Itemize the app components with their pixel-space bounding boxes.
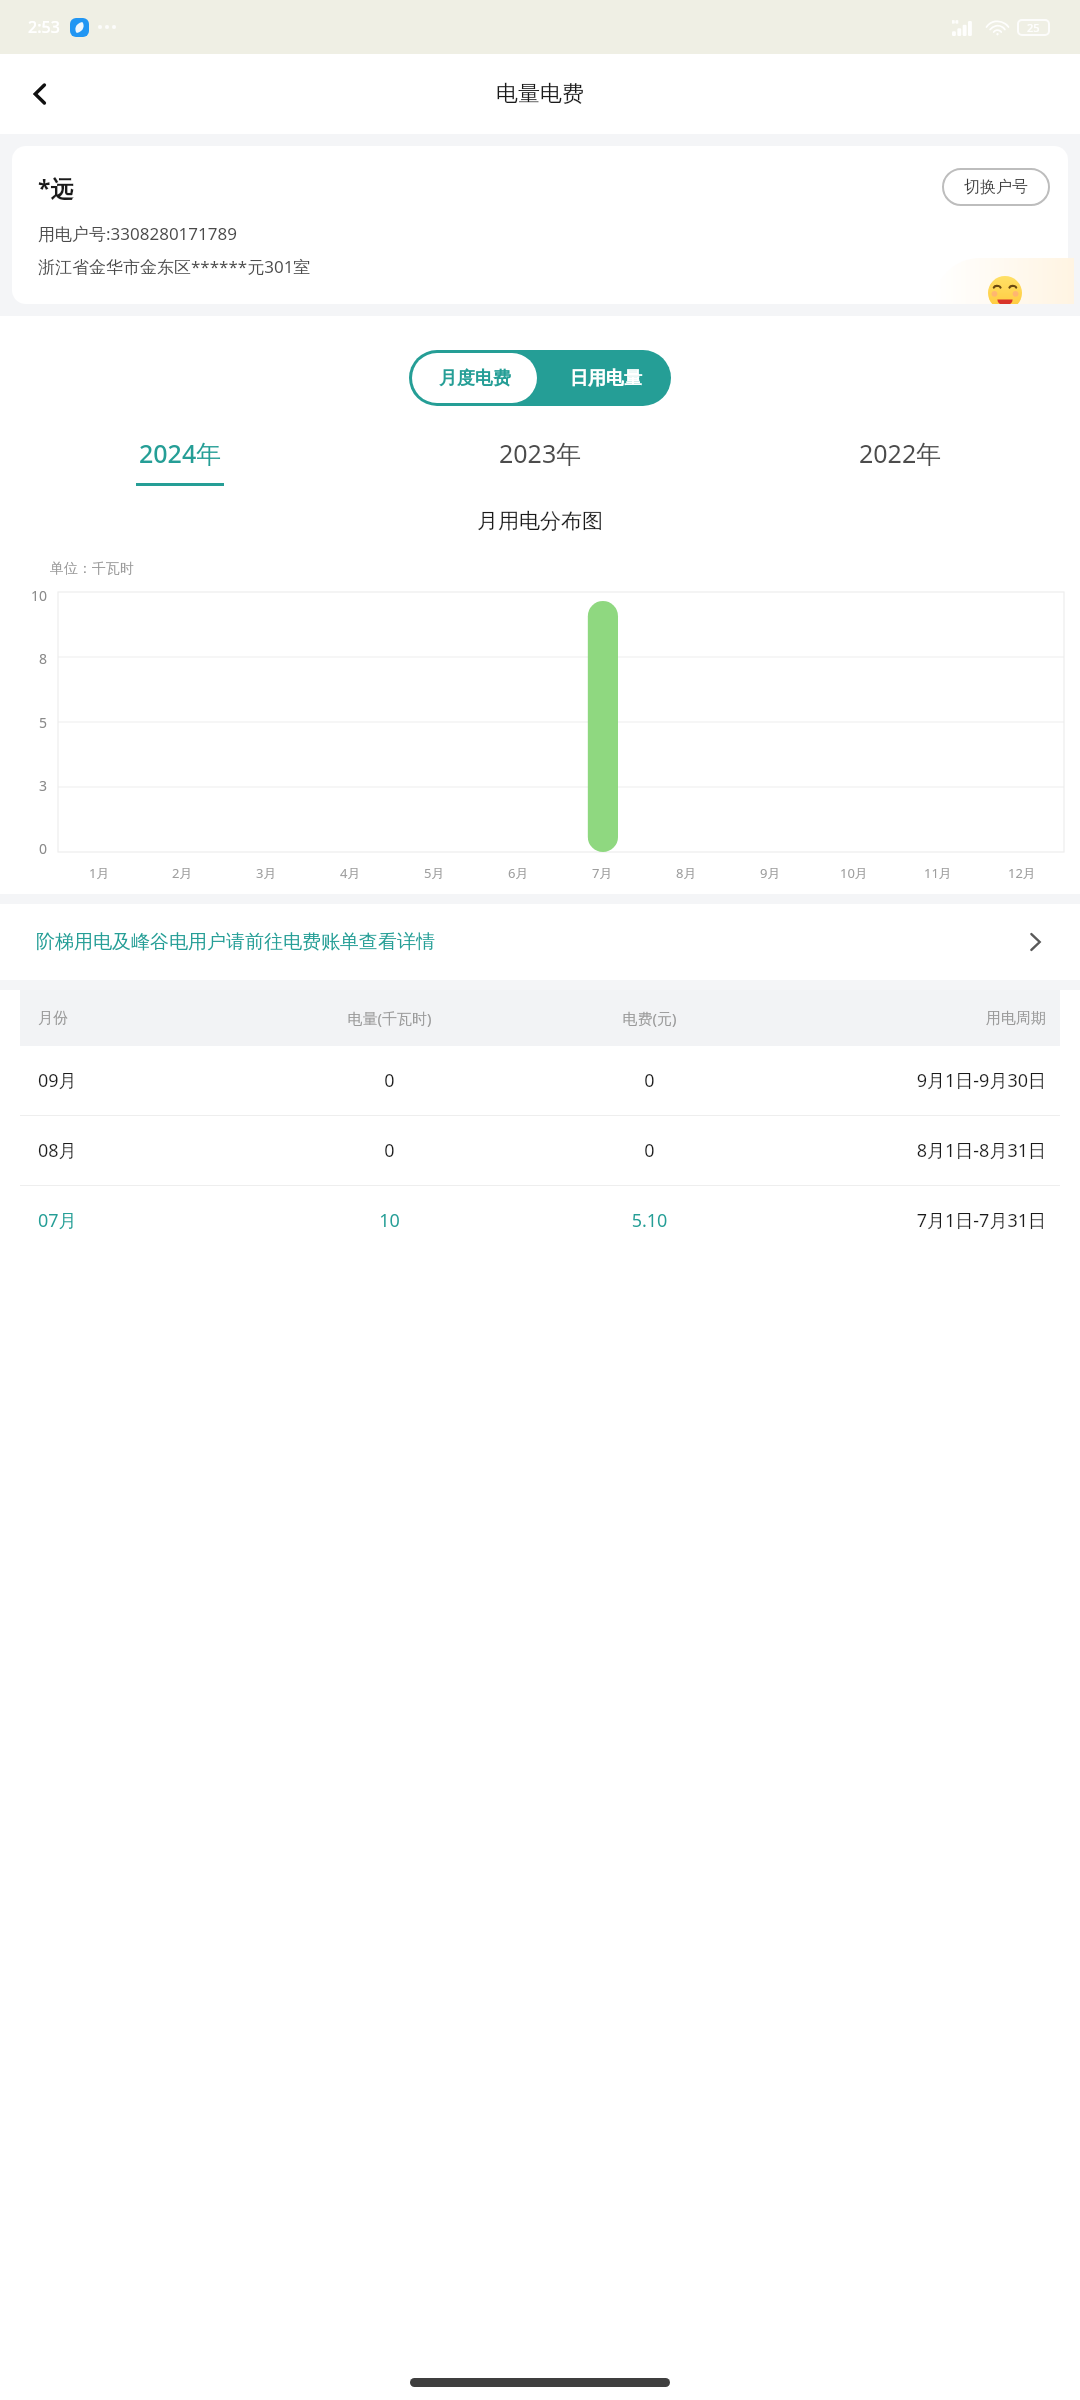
staticText: 2022年 [859,436,942,470]
button[interactable]: *远 [12,146,1068,304]
staticText: 阶梯用电及峰谷电用户请前往电费账单查看详情 [36,930,435,954]
staticText: 2月 [172,864,193,882]
staticText: 0 [530,1138,769,1163]
staticText: 浙江省金华市金东区******元301室 [38,255,311,278]
staticText: 点个赞 [979,312,1030,333]
staticText: 单位：千瓦时 [50,560,134,578]
staticText: 0 [249,1138,530,1163]
button[interactable]: 切换户号 [942,168,1050,206]
button[interactable]: 07月 [20,1186,1060,1255]
staticText: 3月 [256,864,277,882]
staticText: 25 [1027,20,1040,35]
staticText: 07月 [38,1208,249,1233]
staticText: 用电周期 [769,1009,1046,1028]
staticText: 0 [530,1068,769,1093]
staticText: 日用电量 [570,367,642,390]
staticText: 8月1日-8月31日 [769,1138,1046,1163]
button[interactable]: Back [14,68,66,120]
staticText: 7月 [592,864,613,882]
staticText: 2:53 [28,16,60,38]
staticText: 10 [249,1208,530,1233]
staticText: 电费(元) [530,1008,769,1028]
staticText: 用电户号:3308280171789 [38,222,237,245]
staticText: 2023年 [499,436,582,470]
staticText: 10 [31,586,48,605]
button[interactable]: 2024年 [0,436,360,486]
staticText: 月份 [38,1009,249,1028]
staticText: 5月 [424,864,445,882]
staticText: *远 [38,172,74,203]
button[interactable]: 阶梯用电及峰谷电用户请前往电费账单查看详情 [0,904,1080,980]
button[interactable]: 月度电费 [412,353,537,403]
staticText: 8 [39,649,48,668]
staticText: 4月 [340,864,361,882]
staticText: 电量(千瓦时) [249,1008,530,1028]
staticText: 2024年 [139,436,222,470]
staticText: 0 [249,1068,530,1093]
button[interactable]: 点个赞 [934,258,1074,350]
staticText: 电量电费 [496,80,584,108]
staticText: 9月1日-9月30日 [769,1068,1046,1093]
button[interactable]: 08月 [20,1116,1060,1185]
staticText: 10月 [840,864,868,882]
staticText: 月用电分布图 [477,508,603,534]
staticText: 5 [39,713,48,732]
staticText: 1月 [89,864,110,882]
staticText: 12月 [1008,864,1036,882]
button[interactable]: 2023年 [360,436,720,486]
staticText: 9月 [760,864,781,882]
staticText: 月度电费 [439,367,511,390]
staticText: 0 [39,839,48,858]
button[interactable]: 2022年 [720,436,1080,486]
staticText: 11月 [924,864,952,882]
staticText: 09月 [38,1068,249,1093]
staticText: 5.10 [530,1208,769,1233]
staticText: 3 [39,776,48,795]
staticText: 6月 [508,864,529,882]
staticText: 08月 [38,1138,249,1163]
staticText: 7月1日-7月31日 [769,1208,1046,1233]
button[interactable]: 09月 [20,1046,1060,1115]
staticText: 切换户号 [964,177,1028,197]
staticText: 8月 [676,864,697,882]
button[interactable]: 日用电量 [540,350,671,406]
